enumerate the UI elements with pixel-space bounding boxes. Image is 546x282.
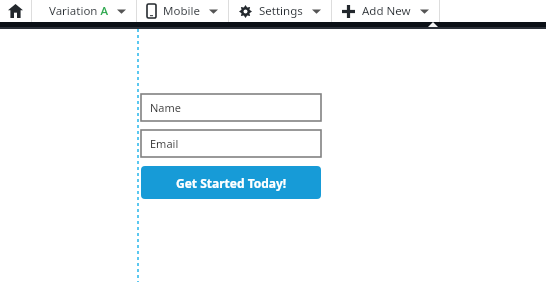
staticText: Add New [362,3,411,19]
button[interactable]: Name [141,94,321,121]
button[interactable]: Home [0,0,31,22]
button[interactable]: Mobile [137,0,228,22]
staticText: Mobile [163,3,200,19]
button[interactable]: Add New [332,0,439,22]
button[interactable]: Settings [229,0,331,22]
staticText: Get Started Today! [176,175,287,191]
staticText: Variation A [49,3,108,19]
button[interactable]: Get Started Today! [141,166,321,199]
button[interactable]: Email [141,130,321,157]
button[interactable]: Variation A [32,0,136,22]
staticText: Name [150,100,182,115]
staticText: Email [150,136,179,151]
staticText: Settings [259,3,303,19]
